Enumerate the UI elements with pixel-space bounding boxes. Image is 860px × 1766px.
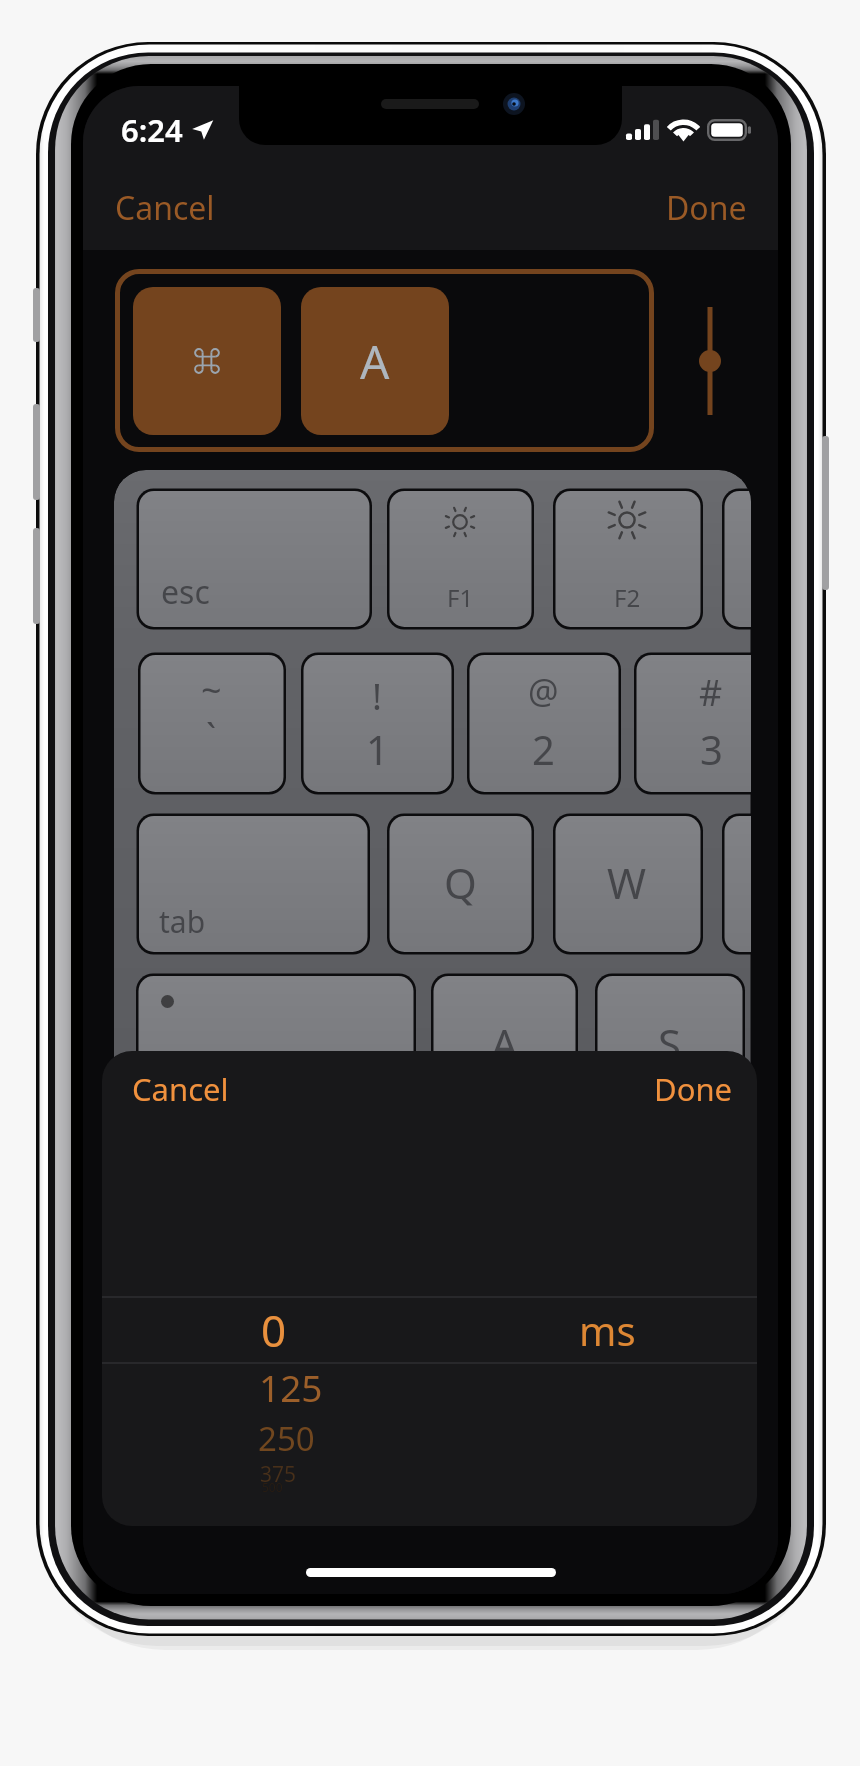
staticText: Cancel xyxy=(132,1068,229,1110)
staticText: 125 xyxy=(259,1362,323,1412)
staticText: 500 xyxy=(262,1479,283,1495)
button[interactable]: Done xyxy=(635,174,778,242)
staticText: 6:24 xyxy=(121,109,183,151)
staticText: 250 xyxy=(258,1416,315,1461)
button[interactable]: Command key xyxy=(133,287,281,435)
button[interactable]: Cursor position xyxy=(688,304,732,418)
staticText: ~ xyxy=(201,666,222,715)
button[interactable]: Cancel xyxy=(83,174,247,242)
staticText: Done xyxy=(654,1068,733,1110)
staticText: tab xyxy=(159,901,206,942)
staticText: Q xyxy=(444,854,477,911)
staticText: 375 xyxy=(260,1460,297,1489)
staticText: ms xyxy=(579,1303,636,1357)
staticText: ! xyxy=(372,670,382,720)
staticText: 2 xyxy=(532,722,555,776)
staticText: F1 xyxy=(447,581,474,614)
staticText: # xyxy=(699,668,723,717)
staticText: A xyxy=(491,1015,518,1072)
staticText: ` xyxy=(206,712,217,761)
staticText: 3 xyxy=(700,722,723,776)
staticText: S xyxy=(658,1015,682,1072)
staticText: 0 xyxy=(261,1300,287,1360)
staticText: F2 xyxy=(614,581,641,614)
staticText: W xyxy=(607,854,647,911)
staticText: 1 xyxy=(366,722,389,776)
button[interactable]: Done xyxy=(630,1054,757,1124)
staticText: Cancel xyxy=(115,186,215,230)
staticText: A xyxy=(360,330,390,393)
staticText: @ xyxy=(528,668,559,714)
staticText: Done xyxy=(666,186,747,230)
button[interactable]: Cancel xyxy=(102,1054,259,1124)
staticText: esc xyxy=(161,570,210,614)
button[interactable]: A xyxy=(301,287,449,435)
